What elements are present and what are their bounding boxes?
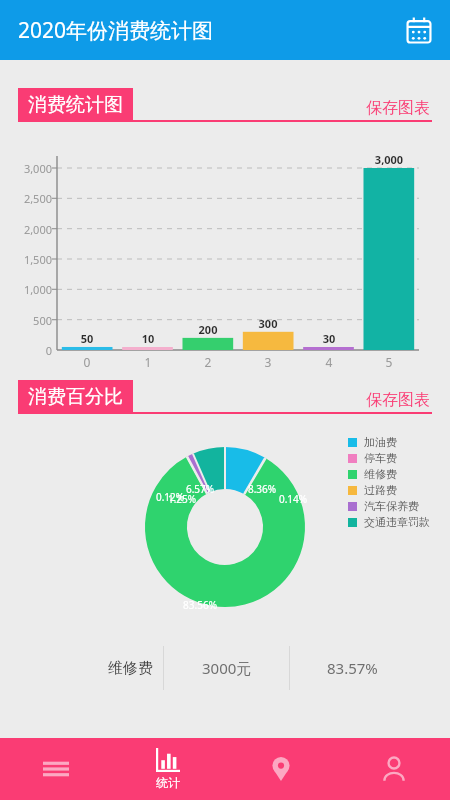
- staticText: 加油费: [364, 435, 397, 449]
- staticText: 0: [8, 343, 52, 358]
- staticText: 1,500: [8, 252, 52, 267]
- button[interactable]: 维修费: [348, 466, 397, 482]
- staticText: 消费百分比: [28, 385, 123, 409]
- staticText: 1.25%: [156, 492, 208, 506]
- staticText: 0.14%: [267, 492, 319, 506]
- staticText: 50: [57, 331, 117, 346]
- button[interactable]: 保存图表: [366, 390, 430, 410]
- button[interactable]: 加油费: [348, 434, 397, 450]
- staticText: 3000元: [202, 658, 252, 678]
- button[interactable]: 交通违章罚款: [348, 514, 430, 530]
- staticText: 统计: [156, 775, 180, 790]
- button[interactable]: 停车费: [348, 450, 397, 466]
- staticText: 停车费: [364, 451, 397, 465]
- staticText: 消费统计图: [28, 93, 123, 117]
- staticText: 83.56%: [174, 598, 226, 612]
- staticText: 2020年份消费统计图: [18, 16, 214, 45]
- staticText: 200: [178, 322, 238, 337]
- staticText: 过路费: [364, 483, 397, 497]
- staticText: 1: [118, 354, 178, 370]
- staticText: 3,000: [359, 152, 419, 167]
- staticText: 汽车保养费: [364, 499, 419, 513]
- staticText: 3: [238, 354, 298, 370]
- button[interactable]: 3000元: [164, 646, 289, 690]
- button[interactable]: 汽车保养费: [348, 498, 419, 514]
- staticText: 83.57%: [327, 658, 378, 678]
- button[interactable]: Profile: [337, 738, 450, 800]
- staticText: 300: [238, 316, 298, 331]
- staticText: 5: [359, 354, 419, 370]
- staticText: 6.57%: [174, 482, 226, 496]
- staticText: 2,000: [8, 222, 52, 237]
- button[interactable]: Menu: [0, 738, 112, 800]
- staticText: 10: [118, 331, 178, 346]
- staticText: 2: [178, 354, 238, 370]
- staticText: 2,500: [8, 191, 52, 206]
- staticText: 保存图表: [366, 98, 430, 118]
- button[interactable]: Location: [224, 738, 337, 800]
- staticText: 4: [299, 354, 359, 370]
- button[interactable]: 维修费: [37, 646, 163, 690]
- button[interactable]: 83.57%: [290, 646, 415, 690]
- staticText: 500: [8, 313, 52, 328]
- button[interactable]: 消费百分比: [18, 380, 133, 414]
- button[interactable]: 过路费: [348, 482, 397, 498]
- staticText: 3,000: [8, 161, 52, 176]
- button[interactable]: 保存图表: [366, 98, 430, 118]
- staticText: 保存图表: [366, 390, 430, 410]
- staticText: 交通违章罚款: [364, 515, 430, 529]
- button[interactable]: 消费统计图: [18, 88, 133, 122]
- staticText: 0.12%: [144, 490, 196, 504]
- button[interactable]: Calendar: [402, 13, 436, 47]
- button[interactable]: 统计: [112, 738, 224, 800]
- staticText: 8.36%: [236, 482, 288, 496]
- staticText: 1,000: [8, 282, 52, 297]
- staticText: 30: [299, 331, 359, 346]
- staticText: 维修费: [108, 659, 153, 678]
- staticText: 0: [57, 354, 117, 370]
- staticText: 维修费: [364, 467, 397, 481]
